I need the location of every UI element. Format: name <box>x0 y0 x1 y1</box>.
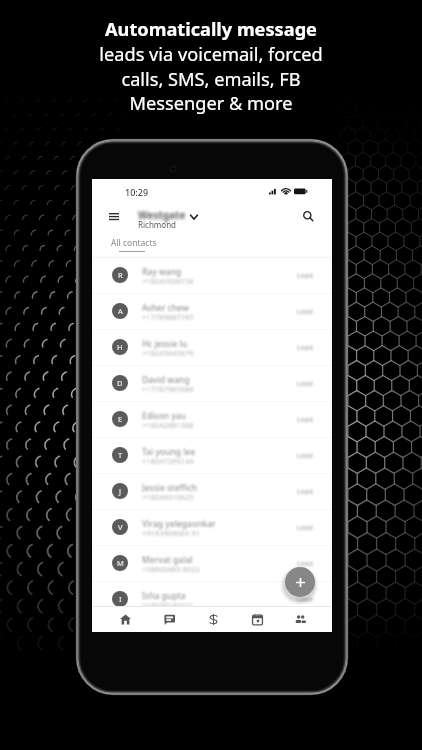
staticText: Lead <box>297 343 313 353</box>
button[interactable]: Add <box>285 567 315 597</box>
button[interactable]: A <box>92 293 332 329</box>
staticText: Richmond <box>138 219 177 230</box>
staticText: +18042881368 <box>142 420 194 430</box>
staticText: V <box>118 522 123 532</box>
button[interactable]: Westgate <box>138 208 186 222</box>
button[interactable]: Messages <box>147 606 191 632</box>
button[interactable]: Payments <box>191 606 235 632</box>
button[interactable]: H <box>92 329 332 365</box>
button[interactable]: E <box>92 401 332 437</box>
staticText: I <box>119 594 122 604</box>
staticText: H <box>117 342 123 352</box>
staticText: Lead <box>297 595 313 605</box>
button[interactable]: I <box>92 581 332 617</box>
staticText: E <box>118 414 123 424</box>
staticText: A <box>118 306 123 316</box>
staticText: Asher chew <box>142 302 189 314</box>
staticText: +18047269144 <box>142 456 194 466</box>
staticText: Lead <box>297 415 313 425</box>
staticText: leads via voicemail, forced calls, SMS, … <box>99 42 323 115</box>
button[interactable]: All contacts <box>106 233 156 253</box>
staticText: +18047628158 <box>142 276 194 286</box>
staticText: Jessie steffich <box>142 482 198 494</box>
button[interactable]: V <box>92 509 332 545</box>
button[interactable]: J <box>92 473 332 509</box>
staticText: Mervat galal <box>142 554 193 566</box>
staticText: Lead <box>297 523 313 533</box>
staticText: +9163909069 91 <box>142 528 200 538</box>
staticText: Tai young lee <box>142 446 196 458</box>
staticText: Automatically message <box>105 17 317 42</box>
button[interactable]: Contacts <box>279 606 321 632</box>
button[interactable]: M <box>92 545 332 581</box>
button[interactable]: Calendar <box>235 606 279 632</box>
button[interactable]: T <box>92 437 332 473</box>
staticText: +17789687765 <box>142 312 194 322</box>
staticText: Lead <box>297 379 313 389</box>
staticText: Virag yelegaonkar <box>142 518 216 530</box>
staticText: All contacts <box>111 237 157 249</box>
button[interactable]: Search <box>299 207 318 226</box>
staticText: +19056143221 <box>142 600 194 610</box>
staticText: Isha gupta <box>142 590 186 602</box>
staticText: Edison yau <box>142 410 186 422</box>
staticText: J <box>119 486 122 496</box>
staticText: D <box>117 378 123 388</box>
staticText: Ray wang <box>142 266 182 278</box>
staticText: Lead <box>297 307 313 317</box>
staticText: +18045645879 <box>142 348 194 358</box>
staticText: Hc jessie lu <box>142 338 188 350</box>
staticText: +17787965686 <box>142 384 194 394</box>
staticText: +38600483 8022 <box>142 564 200 574</box>
staticText: Lead <box>297 559 313 569</box>
staticText: Lead <box>297 271 313 281</box>
staticText: David wang <box>142 374 190 386</box>
button[interactable]: D <box>92 365 332 401</box>
staticText: T <box>118 450 123 460</box>
staticText: +18049310625 <box>142 492 194 502</box>
staticText: Lead <box>297 487 313 497</box>
button[interactable]: Menu <box>105 208 122 225</box>
staticText: 10:29 <box>125 186 149 198</box>
button[interactable]: R <box>92 257 332 293</box>
staticText: M <box>117 558 124 568</box>
button[interactable]: Home <box>103 606 147 632</box>
staticText: R <box>118 270 123 280</box>
staticText: Lead <box>297 451 313 461</box>
